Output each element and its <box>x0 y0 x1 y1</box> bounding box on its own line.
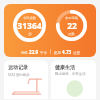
staticText: 22.9 <box>29 49 39 55</box>
staticText: 消耗 <box>21 51 28 55</box>
button[interactable]: 健康生活 <box>51 60 96 99</box>
staticText: 喝水健康，乐享生活 <box>55 72 86 76</box>
button[interactable]: 运动记录 <box>4 60 48 99</box>
staticText: 健康生活 <box>55 64 75 70</box>
staticText: 今日步数 <box>23 16 36 20</box>
staticText: 步 <box>28 32 32 36</box>
staticText: 公里 <box>73 51 80 55</box>
button[interactable]: 今日步数 <box>4 4 96 57</box>
staticText: 次数 <box>68 32 75 36</box>
button[interactable]: 本月运动 <box>56 10 87 41</box>
staticText: 5/22 室内跑步 <box>8 72 30 77</box>
staticText: 运动记录 <box>8 64 28 70</box>
staticText: 本月运动 <box>65 16 78 20</box>
staticText: 距离 <box>54 51 61 55</box>
button[interactable]: 今日步数 <box>13 9 46 42</box>
staticText: 31364 <box>17 20 42 32</box>
staticText: 4.73 <box>62 49 72 55</box>
staticText: 千卡 <box>40 51 47 55</box>
staticText: 22 <box>67 20 77 32</box>
